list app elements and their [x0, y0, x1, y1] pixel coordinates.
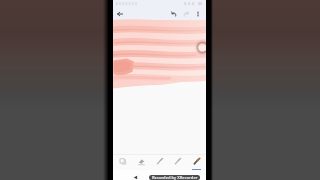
button[interactable]: Back — [131, 173, 139, 180]
button[interactable]: Shapes — [114, 155, 131, 170]
button[interactable]: Undo — [170, 10, 178, 18]
button[interactable]: Pencil — [151, 155, 168, 170]
button[interactable]: More options — [194, 10, 202, 18]
staticText: Recorded by XRecorder — [152, 175, 198, 180]
button[interactable]: Pen — [169, 155, 186, 170]
button[interactable]: Redo — [182, 10, 190, 18]
button[interactable]: Eraser — [133, 155, 150, 170]
button[interactable]: Brush size — [196, 41, 206, 54]
button[interactable]: Back — [116, 10, 124, 18]
button[interactable]: Brush — [188, 155, 205, 170]
